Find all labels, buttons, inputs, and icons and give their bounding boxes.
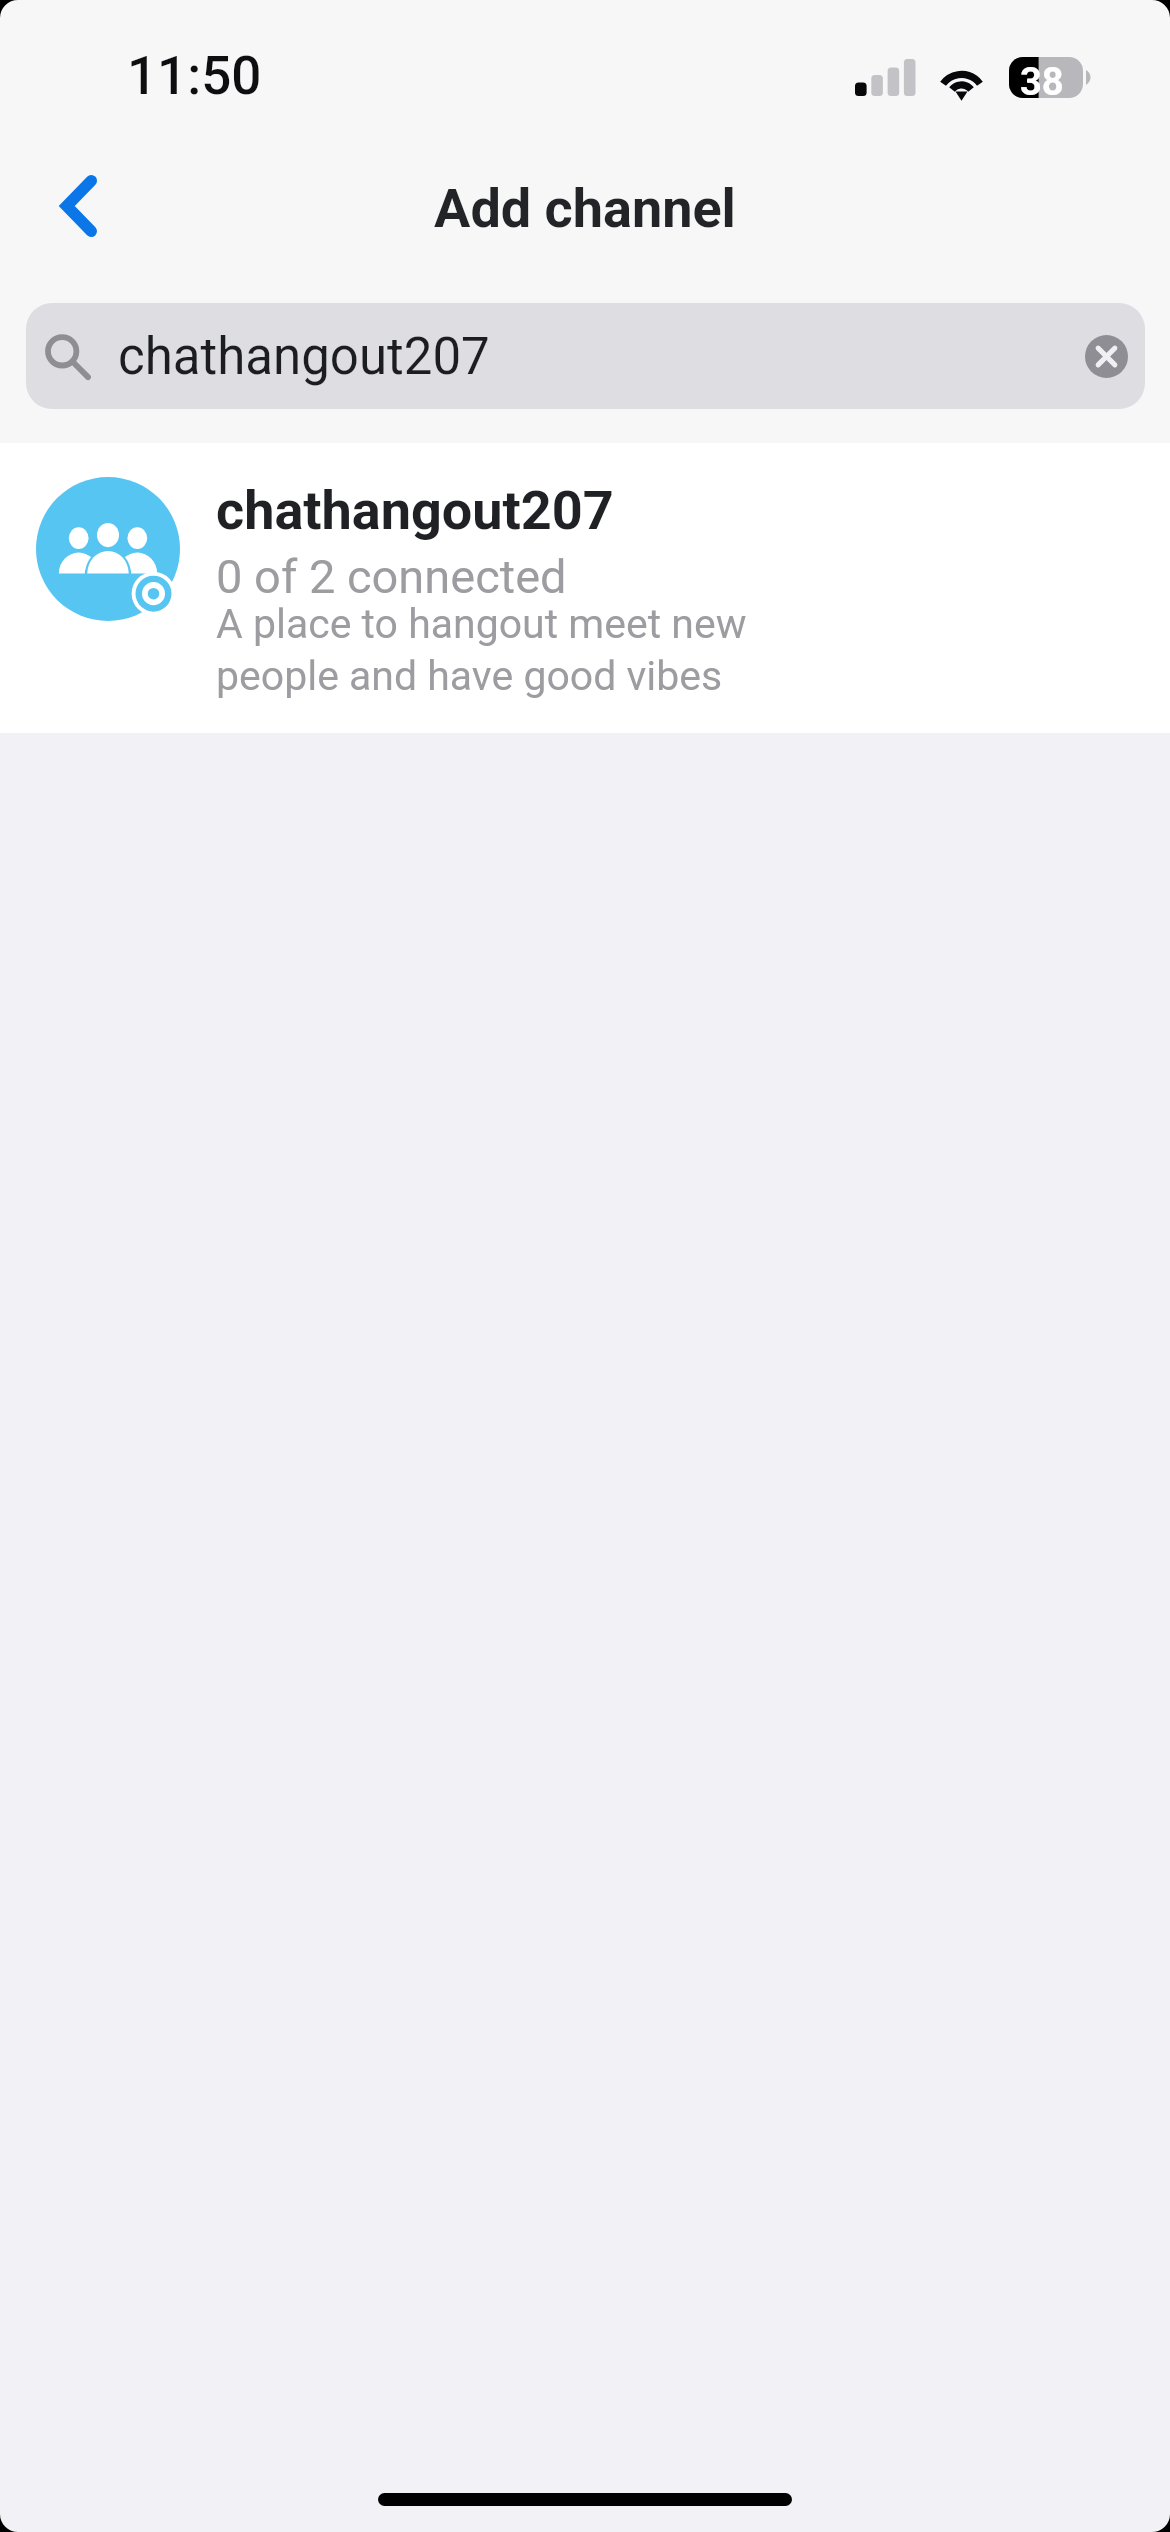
staticText: chathangout207 [118, 327, 490, 387]
button[interactable]: chathangout207 [0, 443, 1170, 733]
button[interactable]: Back [21, 147, 137, 265]
staticText: 38 [1020, 60, 1064, 101]
staticText: A place to hangout meet new people and h… [216, 600, 747, 700]
staticText: 0 of 2 connected [216, 549, 567, 604]
staticText: Add channel [434, 177, 736, 240]
button[interactable]: Clear search [1073, 323, 1139, 389]
staticText: chathangout207 [216, 479, 614, 542]
staticText: 11:50 [127, 45, 262, 107]
button[interactable]: chathangout207 [26, 303, 1145, 409]
